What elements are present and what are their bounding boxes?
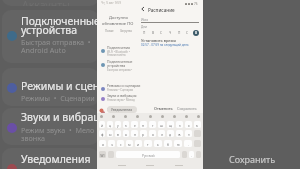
button[interactable]: Подключенные	[2, 10, 99, 63]
button[interactable]: Инструмент 6	[161, 115, 164, 118]
button[interactable]: р	[140, 130, 147, 137]
button[interactable]: Инструмент 2	[112, 115, 115, 118]
staticText: и	[137, 142, 140, 146]
staticText: Подключенные	[107, 59, 133, 64]
button[interactable]: Уведомления	[2, 148, 99, 169]
button[interactable]: Сохранить	[177, 106, 197, 111]
staticText: м	[128, 142, 131, 146]
button[interactable]: Русский	[116, 151, 180, 158]
staticText: Режим звука • Мело	[21, 125, 95, 135]
button[interactable]: ч	[108, 140, 115, 147]
staticText: Расписание	[148, 7, 175, 13]
button[interactable]: ъ	[194, 121, 201, 128]
button[interactable]: Подключенные	[97, 59, 138, 70]
staticText: .	[188, 142, 189, 146]
button[interactable]: к	[123, 121, 129, 128]
button[interactable]: о	[149, 130, 156, 137]
staticText: я	[102, 142, 104, 146]
button[interactable]: ф	[99, 130, 105, 137]
staticText: ю	[177, 142, 180, 146]
button[interactable]: Звуки и вибрация	[97, 93, 138, 104]
button[interactable]: х	[185, 121, 192, 128]
button[interactable]: ю	[174, 140, 182, 147]
button[interactable]: з	[176, 121, 183, 128]
button[interactable]: Звуки и вибраци	[2, 108, 99, 145]
button[interactable]: э	[185, 130, 192, 137]
staticText: С	[160, 31, 163, 35]
staticText: э	[188, 132, 190, 136]
button[interactable]: е	[131, 121, 138, 128]
staticText: з	[179, 123, 181, 127]
button[interactable]: Ч	[167, 30, 173, 36]
staticText: ж	[178, 132, 181, 136]
button[interactable]: т	[144, 140, 152, 147]
staticText: Wi-Fi • Bluetooth •	[107, 50, 130, 54]
button[interactable]: б	[164, 140, 172, 147]
button[interactable]: Назад	[140, 6, 146, 12]
staticText: П	[178, 31, 181, 35]
button[interactable]: ш	[158, 121, 165, 128]
button[interactable]: С	[184, 30, 190, 36]
button[interactable]: ы	[107, 130, 113, 137]
button[interactable]: г	[149, 121, 156, 128]
staticText: Быстрая отправка •	[107, 68, 133, 72]
button[interactable]: С	[158, 30, 164, 36]
button[interactable]: у	[115, 121, 121, 128]
button[interactable]: и	[135, 140, 142, 147]
button[interactable]: щ	[167, 121, 174, 128]
button[interactable]: я	[99, 140, 106, 147]
staticText: р	[142, 132, 145, 136]
button[interactable]: Отменить	[154, 106, 173, 111]
button[interactable]: .	[189, 151, 194, 158]
button[interactable]: в	[115, 130, 121, 137]
staticText: Быстрая отправка •	[21, 37, 91, 47]
button[interactable]: Инструмент 1	[100, 115, 103, 118]
button[interactable]: В	[193, 30, 199, 36]
button[interactable]: н	[140, 121, 147, 128]
button[interactable]: Инструмент 3	[124, 115, 127, 118]
button[interactable]: а	[123, 130, 129, 137]
staticText: С	[186, 31, 189, 35]
button[interactable]: Режимы и сценарии	[97, 83, 138, 94]
button[interactable]: ц	[107, 121, 113, 128]
button[interactable]: Инструмент 7	[173, 115, 176, 118]
button[interactable]: д	[167, 130, 174, 137]
staticText: ь	[157, 142, 159, 146]
button[interactable]: В	[150, 30, 156, 36]
button[interactable]: Подключения	[97, 45, 138, 56]
button[interactable]: П	[141, 30, 147, 36]
button[interactable]: ь	[154, 140, 162, 147]
button[interactable]: Символы	[99, 151, 106, 158]
staticText: у	[117, 123, 119, 127]
button[interactable]: П	[176, 30, 182, 36]
button[interactable]: Инструмент 9	[197, 115, 200, 118]
staticText: .	[191, 153, 192, 157]
button[interactable]: Уведомления	[97, 107, 138, 118]
staticText: х	[188, 123, 190, 127]
button[interactable]: Инструмент 4	[136, 115, 139, 118]
button[interactable]: л	[158, 130, 165, 137]
staticText: ф	[101, 132, 104, 136]
button[interactable]: с	[117, 140, 124, 147]
button[interactable]: Инструмент 8	[185, 115, 188, 118]
button[interactable]: Аккаунты	[2, 0, 99, 6]
button[interactable]: ж	[176, 130, 183, 137]
button[interactable]: Ввод	[196, 151, 201, 158]
button[interactable]: .	[184, 140, 192, 147]
staticText: е	[134, 123, 136, 127]
button[interactable]: Эмодзи	[182, 151, 187, 158]
button[interactable]: м	[126, 140, 133, 147]
button[interactable]: Голосовой ввод	[99, 108, 104, 113]
button[interactable]: Язык	[108, 151, 114, 158]
button[interactable]: п	[131, 130, 138, 137]
staticText: к	[125, 123, 127, 127]
button[interactable]: й	[99, 121, 105, 128]
button[interactable]: Инструмент 5	[149, 115, 152, 118]
button[interactable]: Уведомления	[107, 106, 137, 113]
button[interactable]: Режимы и сцена	[2, 68, 99, 106]
